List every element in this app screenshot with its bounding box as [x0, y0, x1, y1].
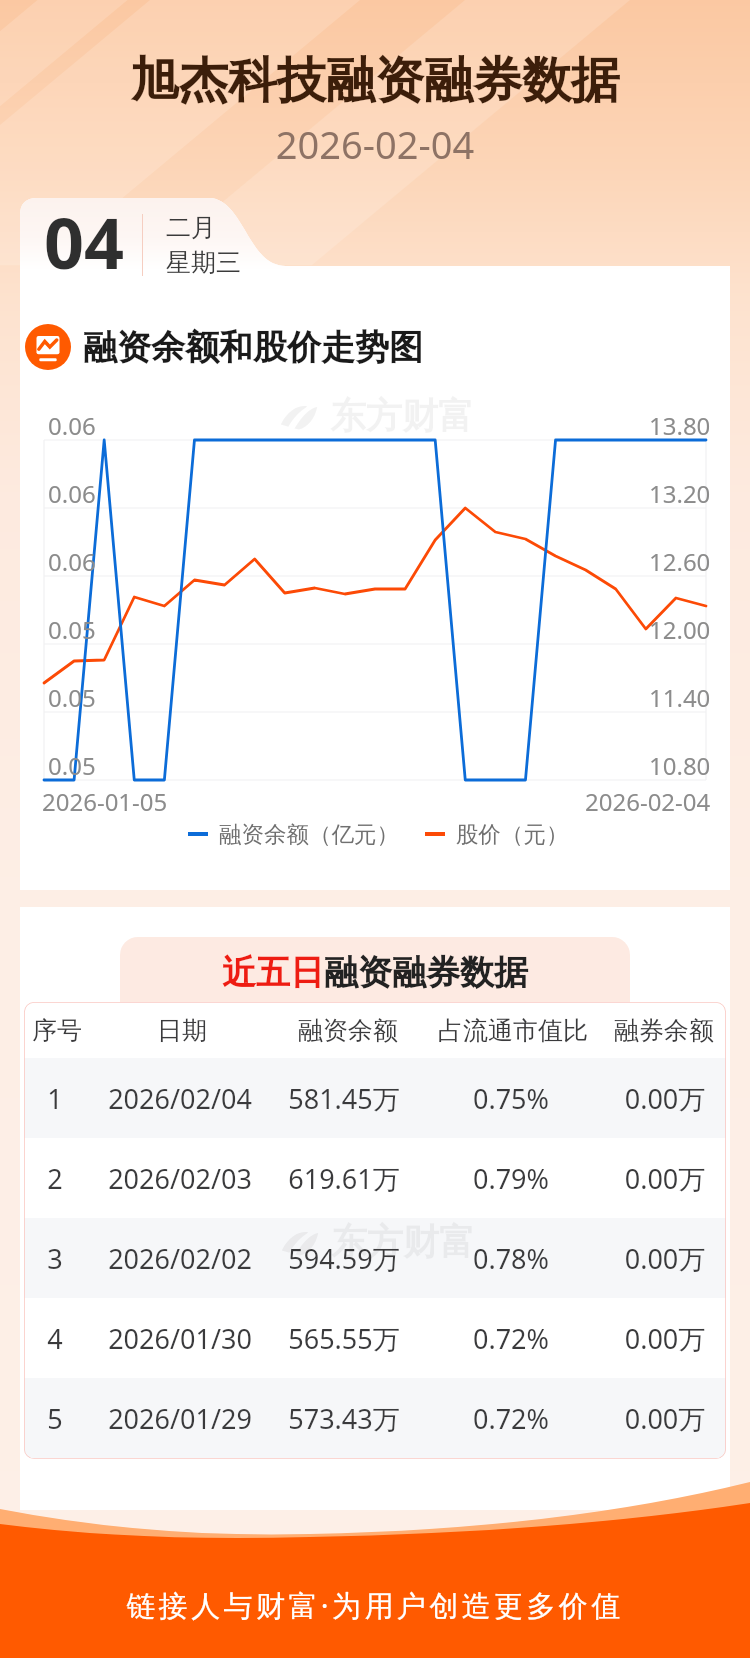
staticText: 日期 — [67, 1015, 297, 1046]
staticText: 2026/01/30 — [65, 1320, 295, 1357]
staticText: 旭杰科技融资融券数据 — [0, 50, 750, 112]
staticText: 13.80 — [649, 409, 711, 442]
staticText: 星期三 — [166, 247, 241, 278]
staticText: 东方财富 — [330, 393, 474, 438]
staticText: 594.59万 — [229, 1240, 459, 1277]
staticText: 619.61万 — [229, 1160, 459, 1197]
staticText: 0.00万 — [550, 1400, 726, 1437]
staticText: 融资余额（亿元） — [219, 820, 399, 848]
staticText: 0.78% — [396, 1240, 626, 1277]
staticText: 10.80 — [649, 749, 711, 782]
staticText: 2026/01/29 — [65, 1400, 295, 1437]
staticText: 2026/02/04 — [65, 1080, 295, 1117]
staticText: 0.72% — [396, 1400, 626, 1437]
staticText: 5 — [24, 1400, 170, 1437]
staticText: 573.43万 — [229, 1400, 459, 1437]
staticText: 融资余额 — [233, 1015, 463, 1046]
staticText: 0.05 — [48, 681, 96, 714]
staticText: 0.00万 — [550, 1080, 726, 1117]
staticText: 0.79% — [396, 1160, 626, 1197]
staticText: 1 — [24, 1080, 170, 1117]
staticText: 融券余额 — [549, 1015, 726, 1046]
staticText: 0.05 — [48, 613, 96, 646]
staticText: 链接人与财富·为用户创造更多价值 — [0, 1585, 750, 1625]
staticText: 占流通市值比 — [398, 1015, 628, 1046]
staticText: 0.06 — [48, 477, 96, 510]
staticText: 2026/02/03 — [65, 1160, 295, 1197]
staticText: 融资余额和股价走势图 — [83, 326, 423, 369]
staticText: 东方财富 — [331, 1219, 475, 1264]
staticText: 12.60 — [649, 545, 711, 578]
staticText: 2026-02-04 — [0, 118, 750, 170]
staticText: 二月 — [166, 212, 216, 243]
staticText: 11.40 — [649, 681, 711, 714]
staticText: 2026-01-05 — [42, 785, 168, 818]
staticText: 序号 — [24, 1015, 172, 1046]
staticText: 12.00 — [649, 613, 711, 646]
staticText: 0.75% — [396, 1080, 626, 1117]
staticText: 0.00万 — [550, 1160, 726, 1197]
staticText: 0.06 — [48, 545, 96, 578]
staticText: 04 — [44, 194, 125, 289]
staticText: 581.45万 — [229, 1080, 459, 1117]
staticText: 4 — [24, 1320, 170, 1357]
staticText: 股价（元） — [456, 820, 569, 848]
staticText: 565.55万 — [229, 1320, 459, 1357]
staticText: 2026-02-04 — [585, 785, 711, 818]
staticText: 0.00万 — [550, 1320, 726, 1357]
staticText: 0.05 — [48, 749, 96, 782]
staticText: 0.72% — [396, 1320, 626, 1357]
staticText: 2026/02/02 — [65, 1240, 295, 1277]
staticText: 3 — [24, 1240, 170, 1277]
staticText: 0.00万 — [550, 1240, 726, 1277]
staticText: 0.06 — [48, 409, 96, 442]
staticText: 13.20 — [649, 477, 711, 510]
staticText: 2 — [24, 1160, 170, 1197]
staticText: 近五日融资融券数据 — [20, 951, 730, 994]
